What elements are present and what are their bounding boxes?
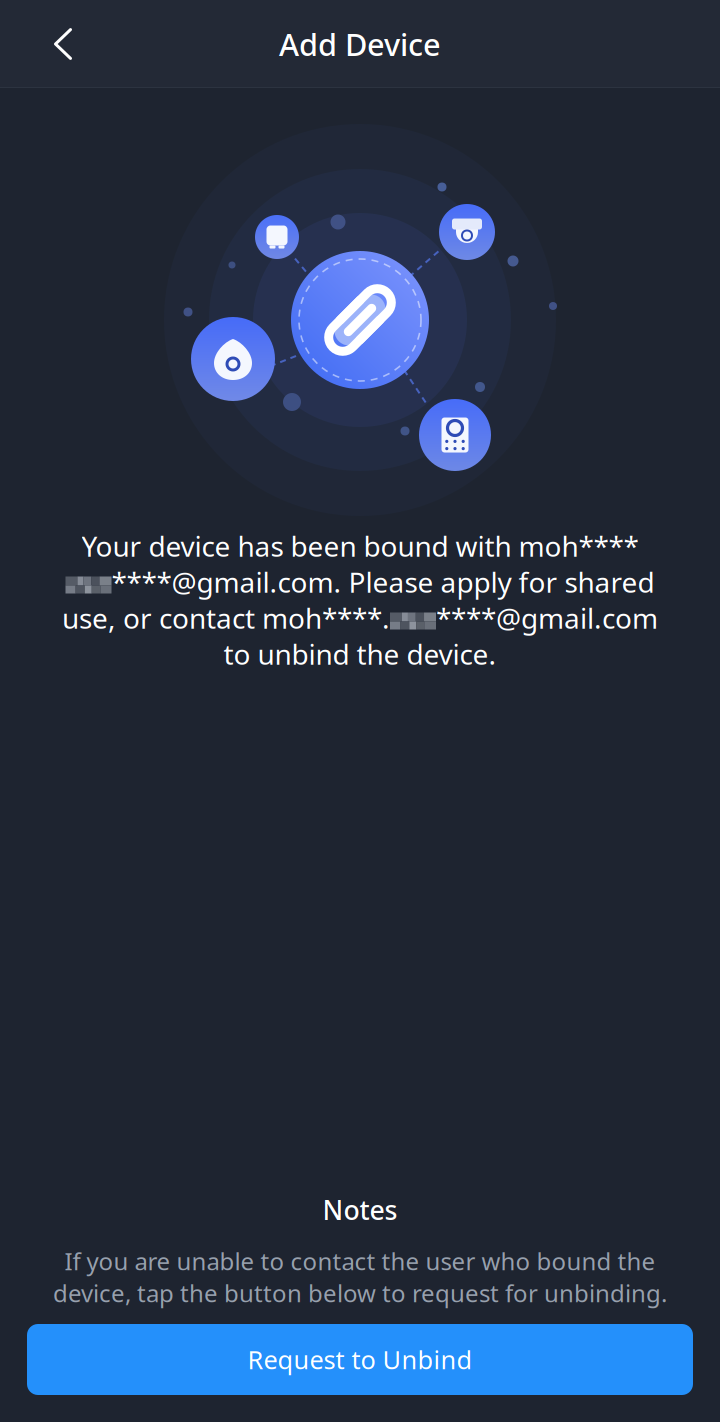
staticText: device, tap the button below to request … xyxy=(53,1277,667,1309)
staticText: Request to Unbind xyxy=(247,1343,472,1376)
button[interactable]: Request to Unbind xyxy=(27,1324,693,1395)
staticText: Add Device xyxy=(279,24,441,64)
staticText: ****@gmail.com xyxy=(436,599,658,637)
staticText: Your device has been bound with moh**** xyxy=(81,527,638,565)
staticText: If you are unable to contact the user wh… xyxy=(64,1245,655,1277)
staticText: ****@gmail.com. Please apply for shared xyxy=(111,563,654,601)
staticText: to unbind the device. xyxy=(223,635,496,673)
staticText: use, or contact moh****. xyxy=(62,599,390,637)
button[interactable]: Back xyxy=(19,0,107,88)
staticText: Notes xyxy=(322,1192,397,1227)
